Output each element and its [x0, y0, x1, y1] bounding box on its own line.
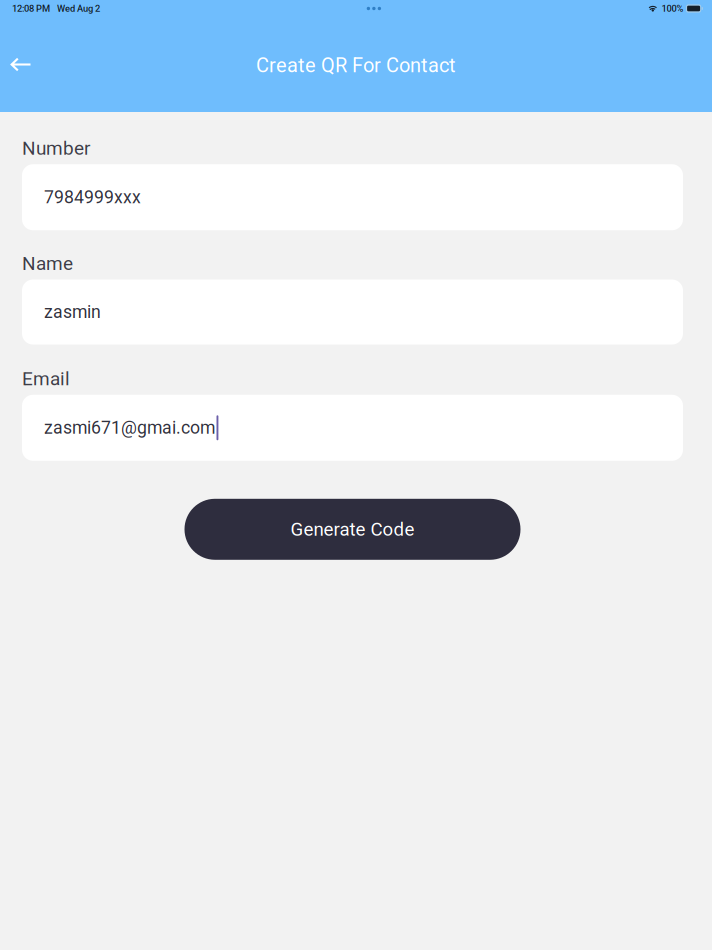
button[interactable]: Generate Code	[184, 499, 520, 560]
button[interactable]: Back	[0, 40, 49, 89]
staticText: Email	[22, 367, 70, 390]
staticText: zasmi671@gmai.com	[44, 417, 215, 438]
staticText: 7984999xxx	[44, 187, 141, 208]
staticText: Wed Aug 2	[57, 3, 100, 14]
staticText: zasmin	[44, 302, 101, 322]
staticText: Number	[22, 137, 90, 159]
staticText: Create QR For Contact	[256, 54, 456, 77]
button[interactable]: zasmi671@gmai.com	[22, 395, 683, 461]
staticText: 12:08 PM	[12, 3, 50, 14]
staticText: 100%	[661, 3, 683, 14]
staticText: Name	[22, 252, 73, 275]
button[interactable]: 7984999xxx	[22, 164, 683, 230]
staticText: Generate Code	[290, 518, 414, 540]
button[interactable]: zasmin	[22, 279, 683, 344]
